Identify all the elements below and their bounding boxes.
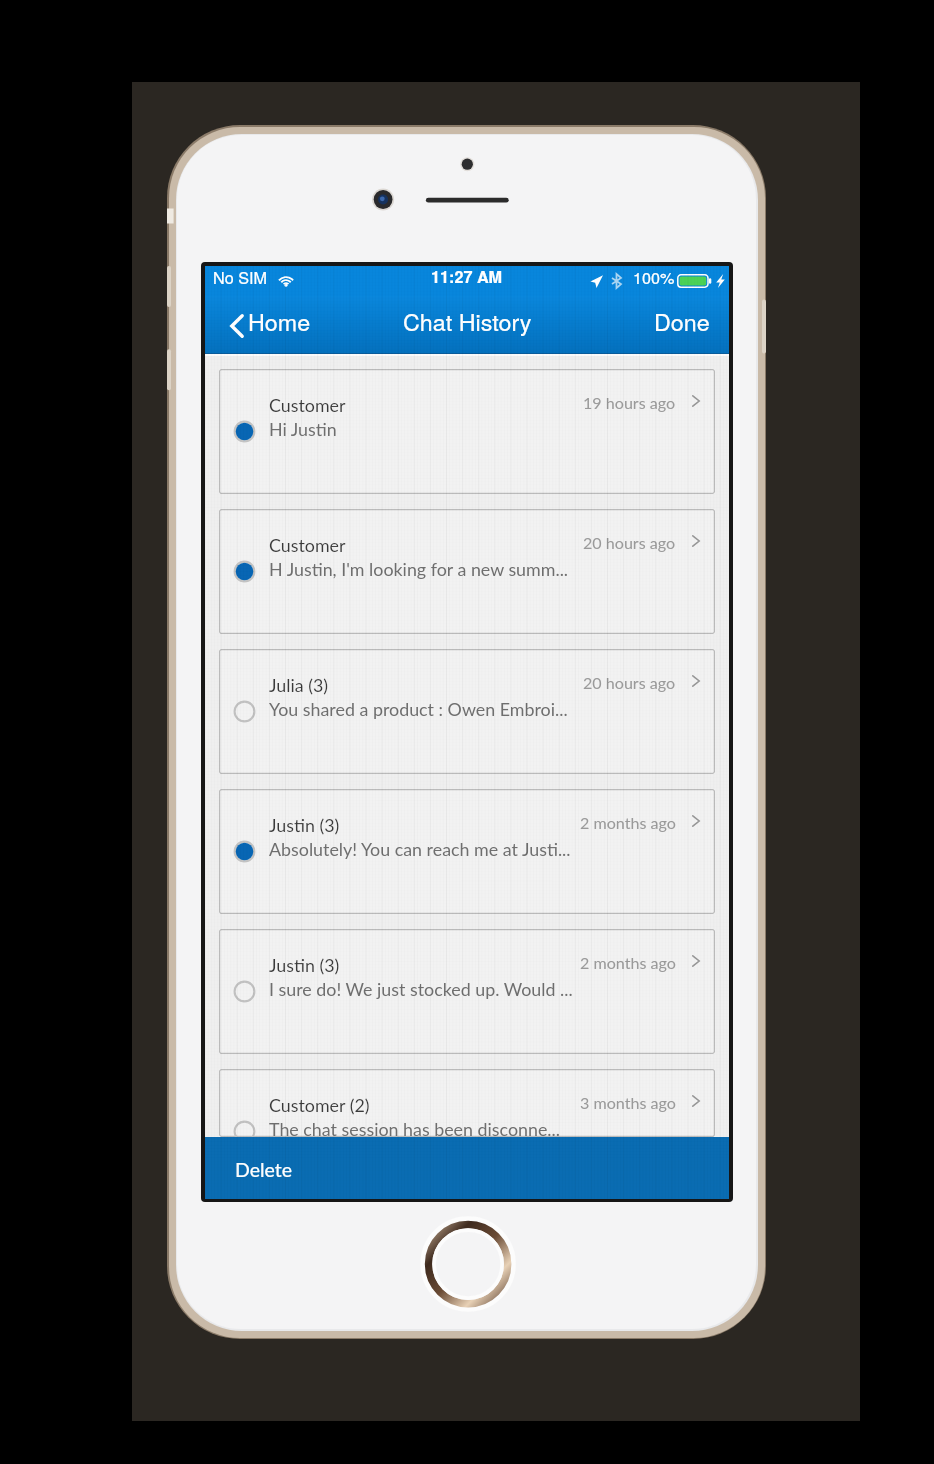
staticText: 2 months ago	[580, 953, 676, 972]
staticText: 100%	[633, 265, 675, 288]
staticText: Julia (3)	[269, 674, 329, 695]
staticText: Done	[654, 304, 710, 337]
staticText: Hi Justin	[269, 418, 337, 439]
staticText: 19 hours ago	[583, 393, 676, 412]
staticText: I sure do! We just stocked up. Would ...	[269, 978, 573, 999]
button[interactable]: Customer	[219, 369, 715, 494]
other: Open chat	[692, 535, 700, 547]
staticText: 2 months ago	[580, 813, 676, 832]
staticText: You shared a product : Owen Embroi...	[269, 698, 568, 719]
staticText: Chat History	[403, 304, 532, 337]
button[interactable]: Home	[224, 309, 316, 342]
staticText: Delete	[235, 1158, 293, 1181]
staticText: 3 months ago	[580, 1093, 676, 1112]
staticText: No SIM	[213, 265, 267, 288]
button[interactable]: Justin (3)	[219, 929, 715, 1054]
staticText: The chat session has been disconne...	[269, 1118, 560, 1137]
button[interactable]: Customer (2)	[219, 1069, 715, 1137]
staticText: 11:27 AM	[431, 265, 503, 288]
staticText: Justin (3)	[269, 954, 340, 975]
staticText: Home	[248, 304, 311, 337]
button[interactable]: Justin (3)	[219, 789, 715, 914]
staticText: Customer	[269, 534, 346, 555]
staticText: 20 hours ago	[583, 673, 676, 692]
other: Open chat	[692, 395, 700, 407]
other: Open chat	[692, 955, 700, 967]
staticText: Customer	[269, 394, 346, 415]
other: Open chat	[692, 675, 700, 687]
other: Open chat	[692, 815, 700, 827]
staticText: Justin (3)	[269, 814, 340, 835]
button[interactable]: Done	[643, 303, 721, 348]
staticText: 20 hours ago	[583, 533, 676, 552]
button[interactable]: Customer	[219, 509, 715, 634]
staticText: Absolutely! You can reach me at Justi...	[269, 838, 571, 859]
button[interactable]: Julia (3)	[219, 649, 715, 774]
staticText: H Justin, I'm looking for a new summ...	[269, 558, 569, 579]
other: Open chat	[692, 1095, 700, 1107]
button[interactable]: Delete	[205, 1137, 729, 1199]
staticText: Customer (2)	[269, 1094, 370, 1115]
